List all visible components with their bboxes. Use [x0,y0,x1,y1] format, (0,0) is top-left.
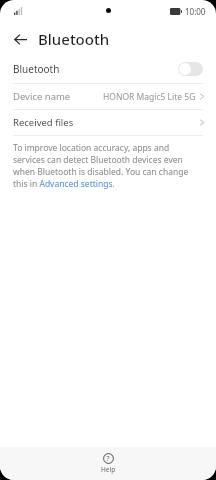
staticText: HONOR Magic5 Lite 5G [103,91,196,103]
button[interactable]: Bluetooth [0,55,216,83]
button[interactable]: Help [91,451,126,476]
staticText: Device name [13,90,71,103]
staticText: Bluetooth [13,62,60,76]
staticText: ? [106,454,110,464]
staticText: Received files [13,116,74,129]
button[interactable]: Back [8,27,32,51]
staticText: Help [101,465,116,474]
staticText: Bluetooth [38,29,110,49]
staticText: 10:00 [185,6,206,17]
button[interactable]: Received files [0,110,216,135]
button[interactable]: Device name [0,84,216,109]
staticText: To improve location accuracy, apps and s… [13,142,203,190]
